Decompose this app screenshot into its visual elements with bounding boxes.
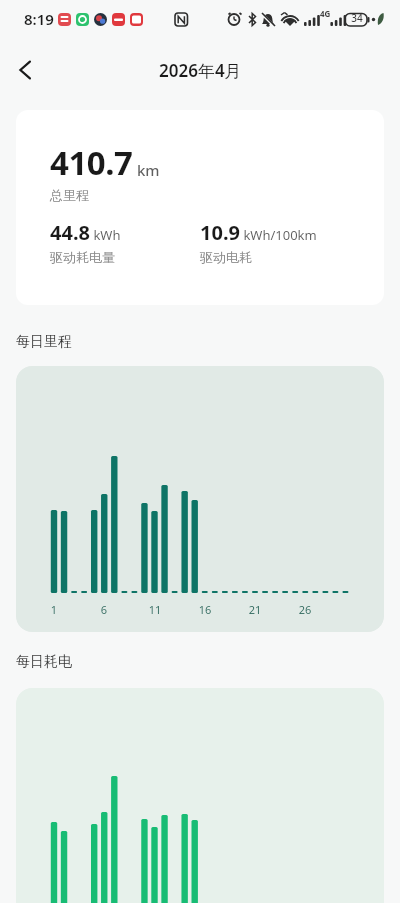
- staticText: 驱动耗电量: [50, 249, 115, 265]
- button[interactable]: [12, 56, 40, 84]
- staticText: 21: [247, 602, 263, 617]
- button[interactable]: 1: [16, 366, 384, 632]
- staticText: 11: [147, 602, 163, 617]
- staticText: 10.9: [200, 219, 240, 246]
- staticText: 驱动电耗: [200, 249, 252, 265]
- staticText: km: [133, 160, 160, 180]
- staticText: 2026年4月: [159, 59, 242, 82]
- staticText: 每日耗电: [16, 653, 72, 671]
- staticText: 26: [297, 602, 313, 617]
- staticText: 1: [46, 602, 62, 617]
- staticText: 每日里程: [16, 333, 72, 351]
- staticText: 410.7: [50, 140, 133, 185]
- staticText: 16: [197, 602, 213, 617]
- staticText: 4G: [320, 8, 331, 19]
- button[interactable]: [16, 688, 384, 903]
- staticText: 总里程: [50, 187, 89, 203]
- button[interactable]: 410.7: [16, 110, 384, 305]
- staticText: 44.8: [50, 219, 90, 246]
- staticText: 8:19: [24, 9, 54, 29]
- staticText: kWh/100km: [240, 226, 317, 244]
- staticText: kWh: [90, 226, 121, 244]
- staticText: 34: [347, 11, 367, 25]
- staticText: 6: [96, 602, 112, 617]
